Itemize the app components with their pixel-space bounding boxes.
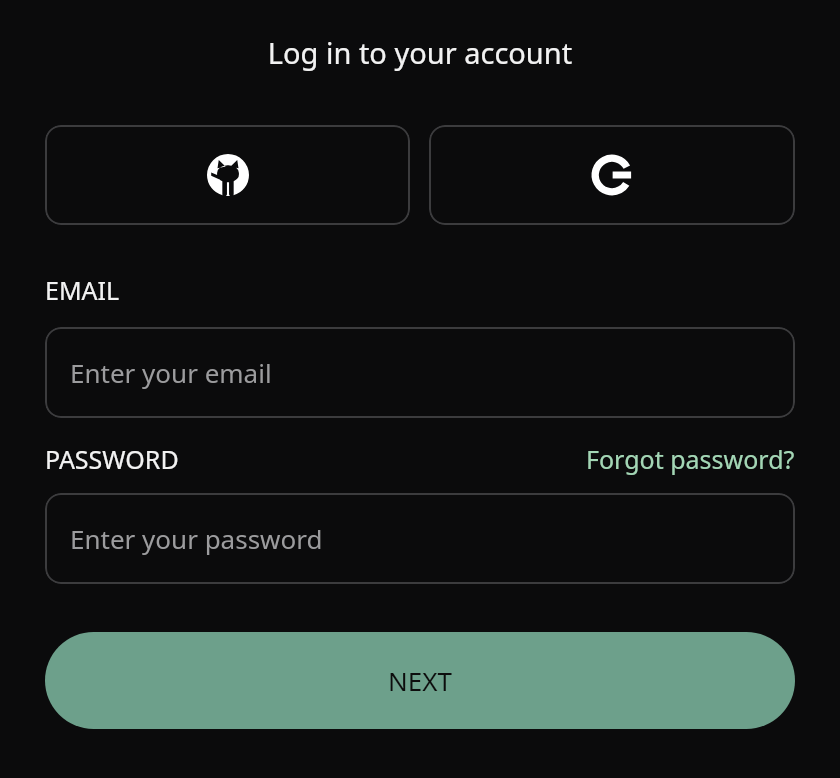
staticText: Enter your email bbox=[70, 355, 272, 390]
button[interactable]: Sign in with GitHub bbox=[45, 125, 410, 225]
staticText: Forgot password? bbox=[586, 442, 795, 476]
staticText: PASSWORD bbox=[45, 442, 179, 476]
staticText: NEXT bbox=[388, 663, 452, 698]
staticText: Log in to your account bbox=[0, 33, 840, 72]
button[interactable]: Enter your email bbox=[45, 327, 795, 418]
button[interactable]: Forgot password? bbox=[586, 442, 795, 476]
staticText: Enter your password bbox=[70, 521, 323, 556]
staticText: EMAIL bbox=[45, 273, 120, 307]
button[interactable]: Enter your password bbox=[45, 493, 795, 584]
button[interactable]: NEXT bbox=[45, 632, 795, 729]
button[interactable]: Sign in with Google bbox=[429, 125, 795, 225]
